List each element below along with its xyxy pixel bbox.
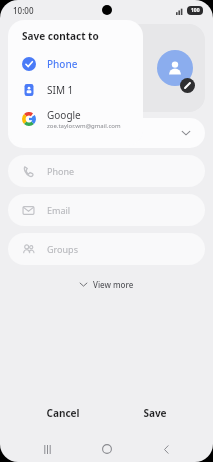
button[interactable]: Home: [95, 437, 119, 461]
staticText: 100: [191, 7, 200, 14]
staticText: SIM 1: [47, 83, 74, 97]
staticText: View more: [93, 279, 134, 290]
button[interactable]: Cancel: [30, 400, 96, 426]
button[interactable]: Expand name: [8, 118, 205, 148]
staticText: Phone: [47, 57, 78, 71]
staticText: Phone: [47, 165, 75, 177]
staticText: Groups: [47, 243, 78, 255]
button[interactable]: View more: [71, 276, 142, 293]
staticText: Save contact to: [22, 29, 99, 43]
button[interactable]: Recent apps: [35, 437, 59, 461]
staticText: 10:00: [13, 5, 34, 16]
button[interactable]: Phone: [8, 155, 205, 187]
button[interactable]: Email: [8, 194, 205, 226]
staticText: Save: [143, 406, 167, 420]
other: Expand name: [181, 128, 191, 138]
button[interactable]: Contact photo: [157, 50, 193, 86]
staticText: Email: [47, 204, 71, 216]
button[interactable]: Back: [154, 437, 178, 461]
staticText: Google: [47, 108, 81, 122]
button[interactable]: Google: [8, 103, 143, 135]
button[interactable]: SIM 1: [8, 77, 143, 103]
button[interactable]: Edit photo: [180, 78, 195, 93]
staticText: zoe.taylor.wm@gmail.com: [47, 122, 121, 130]
button[interactable]: Groups: [8, 233, 205, 265]
button[interactable]: Phone: [8, 51, 143, 77]
button[interactable]: Save: [127, 400, 183, 426]
staticText: Cancel: [46, 406, 80, 420]
